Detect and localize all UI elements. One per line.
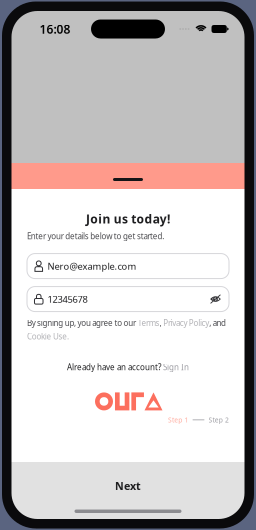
- button[interactable]: 12345678: [27, 287, 229, 312]
- staticText: Nero@example.com: [47, 260, 136, 272]
- staticText: Cookie Use.: [27, 331, 69, 342]
- button[interactable]: Next: [27, 473, 229, 499]
- button[interactable]: Sign In: [163, 362, 189, 372]
- staticText: Step 1: [168, 415, 188, 424]
- staticText: Next: [115, 479, 141, 493]
- staticText: Already have an account?: [67, 362, 163, 372]
- staticText: Step 2: [208, 415, 229, 424]
- staticText: 16:08: [39, 21, 70, 37]
- staticText: , and: [209, 318, 226, 328]
- staticText: Terms: [138, 318, 159, 328]
- button[interactable]: Nero@example.com: [27, 254, 229, 279]
- staticText: Sign In: [163, 362, 189, 372]
- staticText: By signing up, you agree to our: [27, 318, 138, 328]
- staticText: Privacy Policy: [163, 318, 209, 328]
- staticText: Join us today!: [86, 211, 170, 227]
- staticText: 12345678: [47, 293, 87, 305]
- staticText: ,: [159, 318, 163, 328]
- staticText: Enter your details below to get started.: [27, 231, 164, 241]
